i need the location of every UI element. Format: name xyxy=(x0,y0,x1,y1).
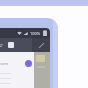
button[interactable]: mail.com xyxy=(0,57,34,69)
button[interactable]: Preview xyxy=(34,52,50,88)
button[interactable]: Document xyxy=(8,42,14,48)
staticText: mail.com xyxy=(0,61,9,66)
button[interactable]: 100% xyxy=(0,18,58,88)
button[interactable]: Sort xyxy=(0,42,4,49)
button[interactable]: Edit xyxy=(32,38,50,52)
staticText: 100% xyxy=(30,31,41,36)
